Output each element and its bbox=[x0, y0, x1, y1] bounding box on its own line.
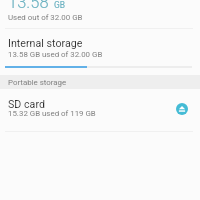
staticText: 13.58 GB used of 32.00 GB bbox=[8, 50, 103, 59]
staticText: 13.58 bbox=[8, 0, 49, 12]
button[interactable]: Eject SD card bbox=[172, 99, 192, 119]
staticText: GB bbox=[54, 0, 66, 10]
staticText: 15.32 GB used of 119 GB bbox=[8, 109, 96, 118]
staticText: Used out of 32.00 GB bbox=[8, 13, 83, 22]
staticText: Portable storage bbox=[8, 78, 67, 87]
button[interactable]: Internal storage bbox=[0, 33, 200, 71]
staticText: Internal storage bbox=[8, 37, 83, 50]
button[interactable]: SD card bbox=[0, 94, 200, 132]
staticText: SD card bbox=[8, 98, 45, 111]
